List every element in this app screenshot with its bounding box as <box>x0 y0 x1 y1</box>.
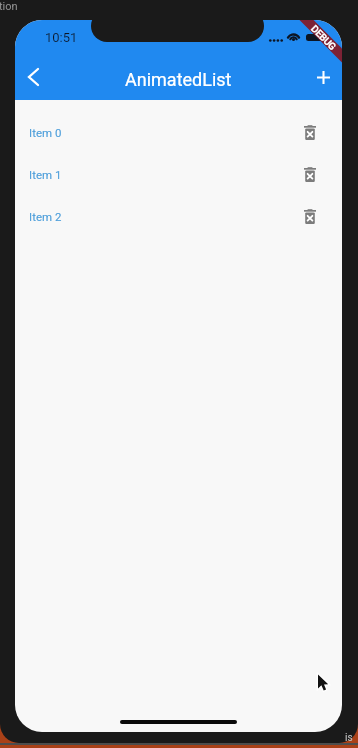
staticText: tion <box>0 0 18 13</box>
staticText: 10:51 <box>45 30 78 45</box>
staticText: Item 2 <box>29 210 62 223</box>
button[interactable]: Item 0 <box>15 111 342 153</box>
button[interactable]: Back <box>15 55 55 99</box>
staticText: DEBUG <box>309 23 339 53</box>
button[interactable]: Item 2 <box>15 195 342 237</box>
button[interactable]: Add <box>301 55 342 99</box>
button[interactable]: Delete <box>300 206 320 226</box>
staticText: Item 1 <box>29 168 62 181</box>
button[interactable]: Delete <box>300 122 320 142</box>
staticText: Item 0 <box>29 126 62 139</box>
button[interactable]: Item 1 <box>15 153 342 195</box>
staticText: is <box>345 732 353 744</box>
staticText: AnimatedList <box>125 69 232 90</box>
button[interactable]: Delete <box>300 164 320 184</box>
